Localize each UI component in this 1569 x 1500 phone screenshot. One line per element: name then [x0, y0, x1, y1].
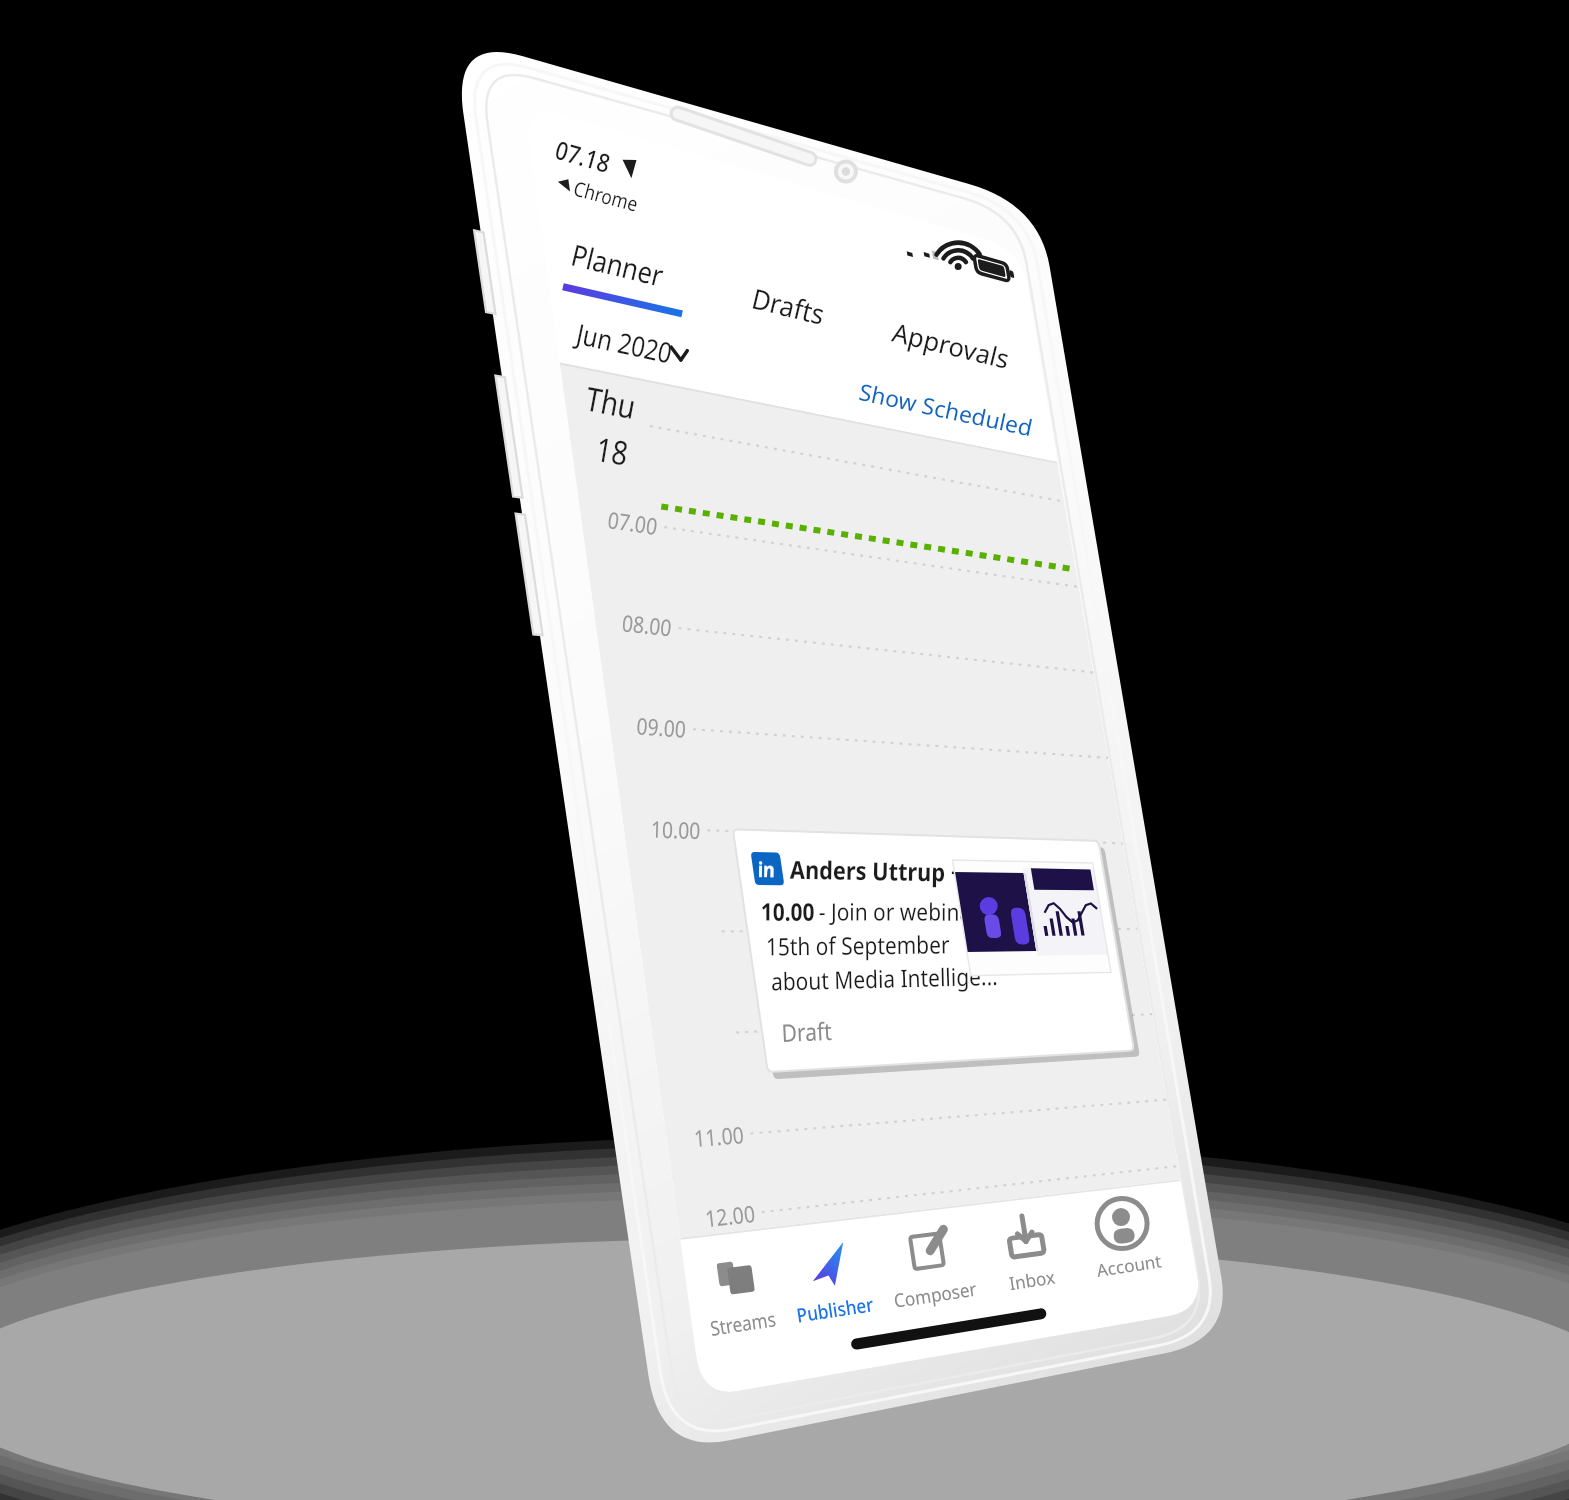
button[interactable]: Publisher [848, 1258, 944, 1378]
button[interactable]: Streams [752, 1280, 848, 1400]
button[interactable]: Anders Uttrup +1 draft post [752, 694, 1152, 1004]
button[interactable]: Show Scheduled [846, 188, 1036, 258]
button[interactable]: Approvals tab [902, 198, 1072, 282]
button[interactable]: Composer [944, 1236, 1048, 1356]
button[interactable]: Inbox [1042, 1208, 1138, 1328]
button[interactable]: Jun 2020 month picker [536, 208, 726, 278]
button[interactable]: Planner tab [556, 112, 746, 196]
button[interactable]: Account [1134, 1188, 1234, 1308]
button[interactable]: Drafts tab [742, 164, 902, 248]
